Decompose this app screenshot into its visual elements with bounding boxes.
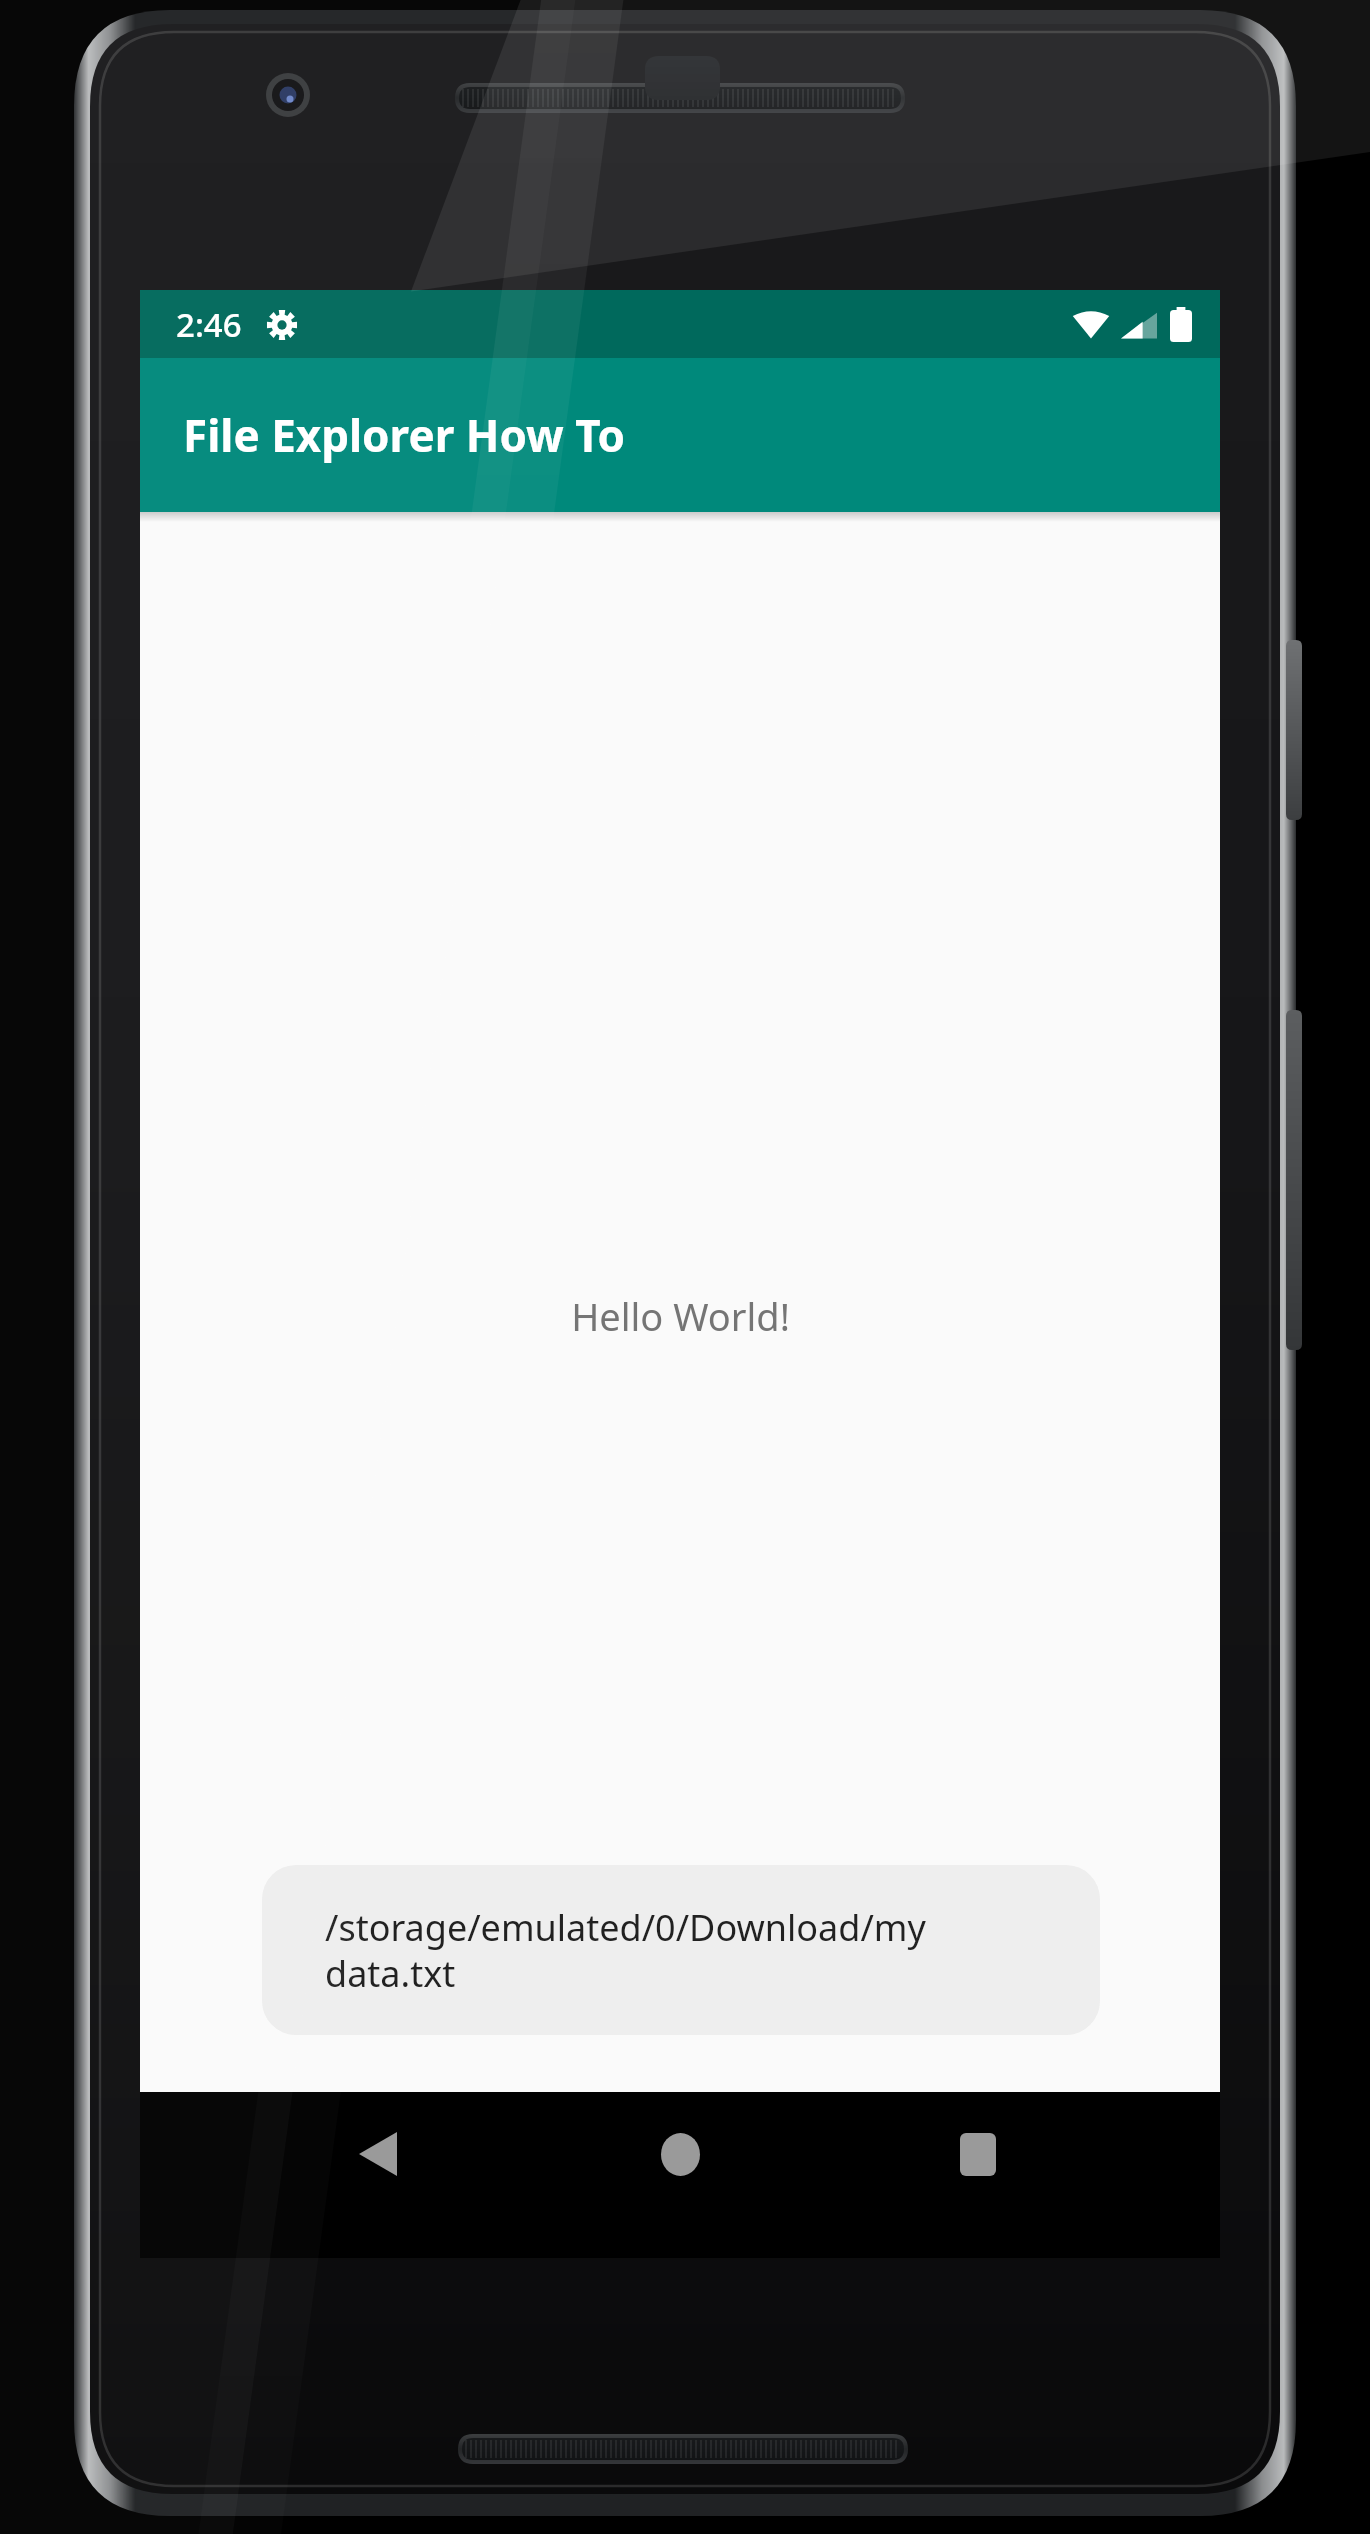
staticText: File Explorer How To bbox=[183, 405, 625, 465]
button[interactable]: Recent apps bbox=[918, 2092, 1038, 2216]
button[interactable]: Home bbox=[620, 2092, 740, 2216]
staticText: /storage/emulated/0/Download/my data.txt bbox=[325, 1903, 1060, 1998]
button[interactable]: /storage/emulated/0/Download/my data.txt bbox=[262, 1865, 1100, 2035]
staticText: Hello World! bbox=[571, 1290, 790, 1342]
staticText: 2:46 bbox=[176, 302, 242, 347]
button[interactable]: Back bbox=[318, 2092, 438, 2216]
